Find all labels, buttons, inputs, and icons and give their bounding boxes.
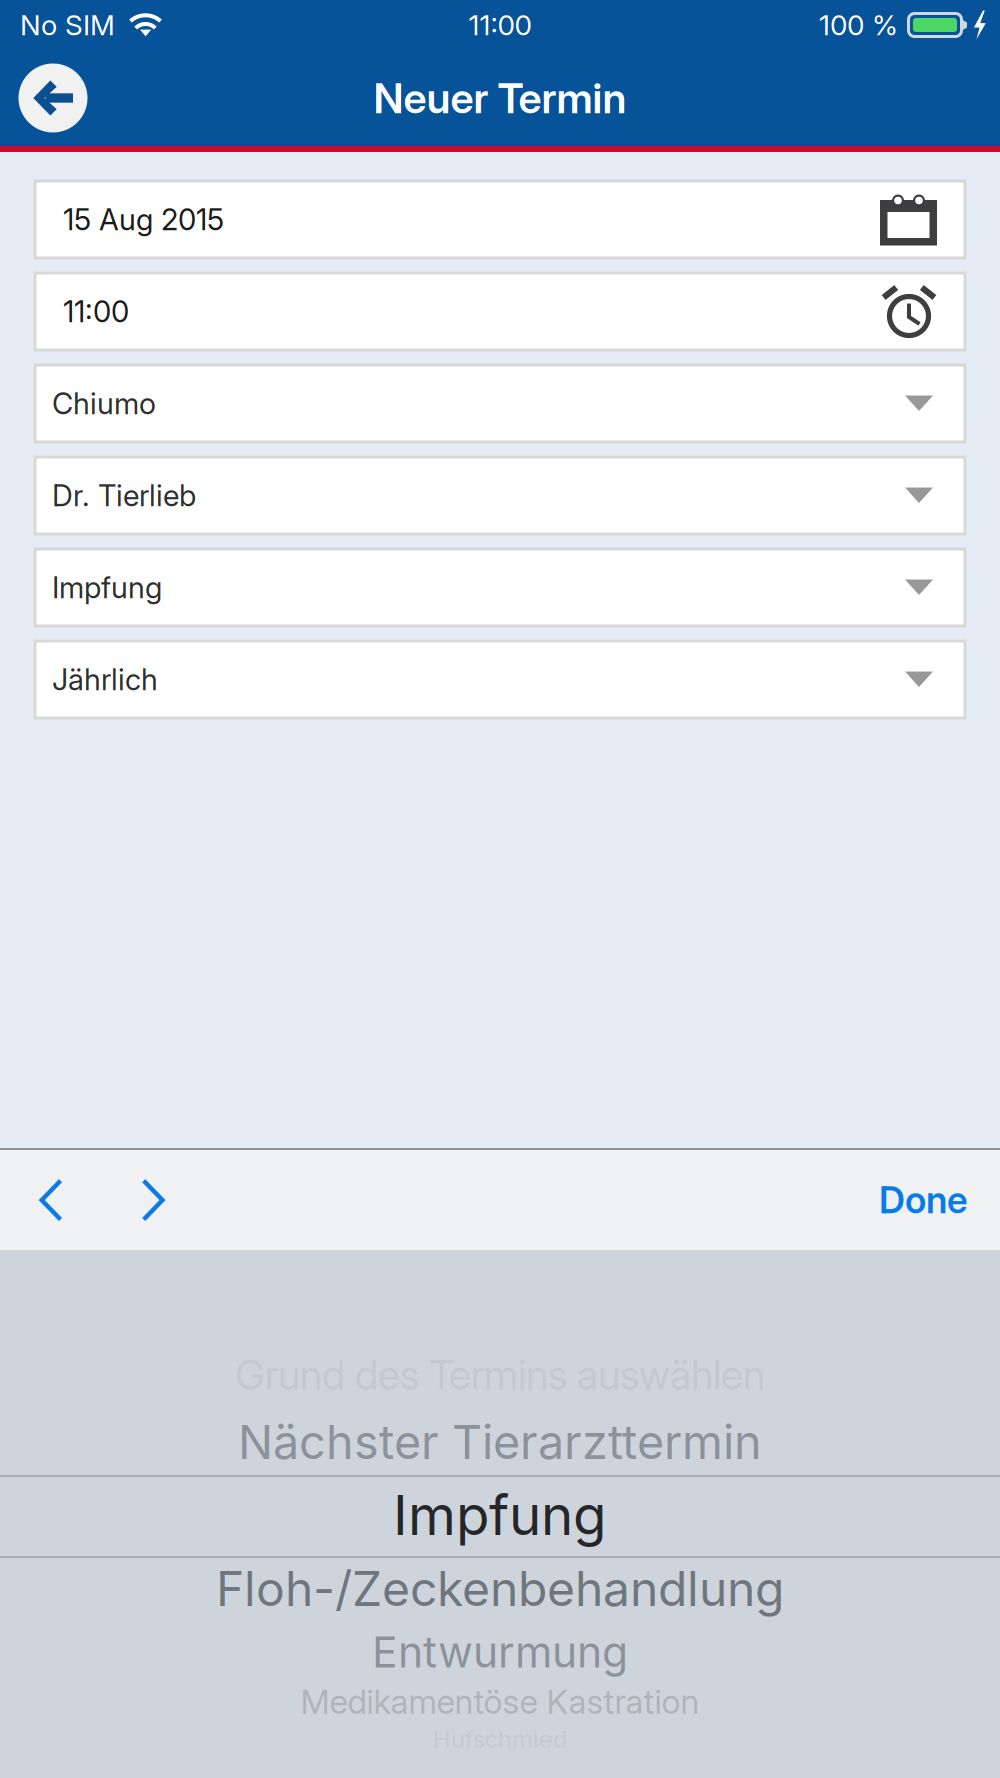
staticText: Hufschmied xyxy=(433,1724,567,1753)
button[interactable]: 11:00 xyxy=(35,273,965,350)
staticText: Dr. Tierlieb xyxy=(52,478,196,513)
staticText: 11:00 xyxy=(468,8,531,42)
staticText: 100 % xyxy=(819,8,898,42)
button[interactable]: Impfung xyxy=(35,549,965,626)
staticText: Medikamentöse Kastration xyxy=(300,1681,699,1722)
button[interactable]: Dr. Tierlieb xyxy=(35,457,965,534)
staticText: Impfung xyxy=(52,570,162,605)
staticText: Jährlich xyxy=(52,662,158,697)
staticText: No SIM xyxy=(20,8,115,42)
staticText: Chiumo xyxy=(52,386,156,421)
staticText: Grund des Termins auswählen xyxy=(235,1350,765,1400)
staticText: Entwurmung xyxy=(372,1626,628,1678)
button[interactable]: Jährlich xyxy=(35,641,965,718)
button[interactable]: Back xyxy=(5,50,101,146)
staticText: Done xyxy=(879,1178,968,1222)
staticText: Floh-/Zeckenbehandlung xyxy=(216,1559,784,1618)
staticText: Nächster Tierarzttermin xyxy=(238,1414,762,1470)
button[interactable]: Previous field xyxy=(0,1150,102,1250)
staticText: Impfung xyxy=(393,1482,607,1548)
button[interactable]: Chiumo xyxy=(35,365,965,442)
staticText: 15 Aug 2015 xyxy=(63,202,224,237)
button[interactable]: Done xyxy=(879,1150,1000,1250)
staticText: 11:00 xyxy=(63,294,129,329)
staticText: Neuer Termin xyxy=(373,73,626,123)
button[interactable]: 15 Aug 2015 xyxy=(35,181,965,258)
button[interactable]: Next field xyxy=(102,1150,204,1250)
